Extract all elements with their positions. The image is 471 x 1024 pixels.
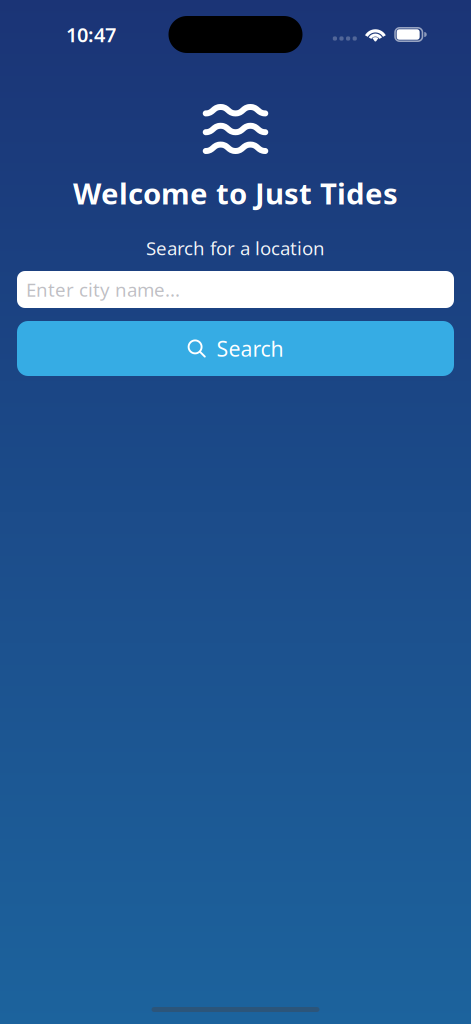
staticText: Enter city name... — [26, 277, 180, 302]
button[interactable]: Search — [17, 321, 454, 376]
staticText: 10:47 — [66, 21, 116, 48]
button[interactable]: Enter city name... — [17, 271, 454, 308]
staticText: Search — [216, 334, 283, 363]
staticText: Search for a location — [146, 236, 325, 260]
staticText: Welcome to Just Tides — [73, 173, 398, 212]
